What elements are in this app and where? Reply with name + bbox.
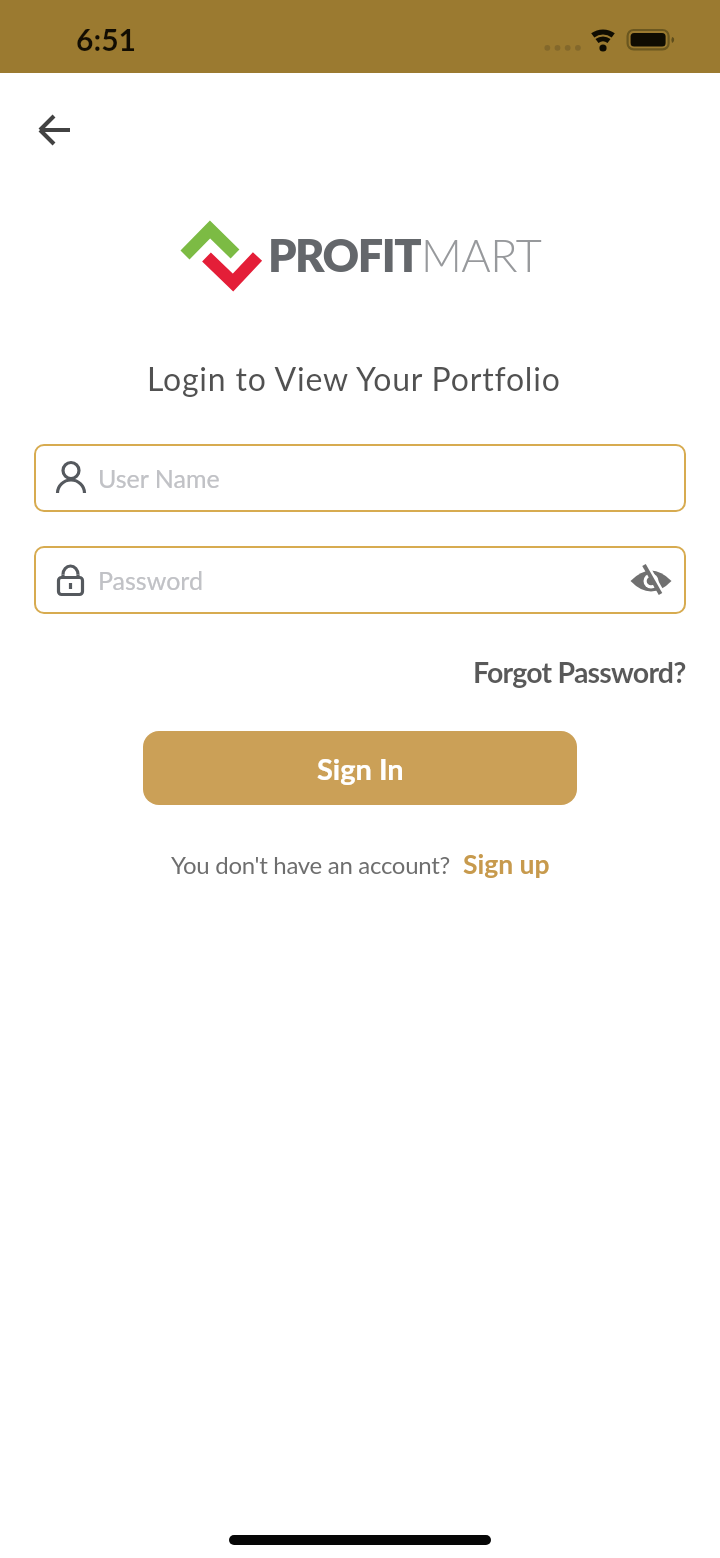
staticText: MART <box>421 228 542 282</box>
staticText: 6:51 <box>76 21 136 57</box>
staticText: Password <box>98 565 203 595</box>
staticText: Login to View Your Portfolio <box>147 359 561 397</box>
staticText: You don't have an account? <box>171 850 450 879</box>
staticText: PROFIT <box>268 228 421 282</box>
button[interactable]: Forgot Password? <box>473 655 686 689</box>
button[interactable]: Sign In <box>143 731 577 805</box>
button[interactable]: Sign up <box>463 848 550 880</box>
button[interactable]: User Name <box>34 444 686 512</box>
button[interactable]: Password <box>34 546 686 614</box>
button[interactable] <box>23 98 87 162</box>
button[interactable] <box>627 556 675 604</box>
staticText: User Name <box>98 463 220 493</box>
staticText: Sign In <box>317 751 404 786</box>
